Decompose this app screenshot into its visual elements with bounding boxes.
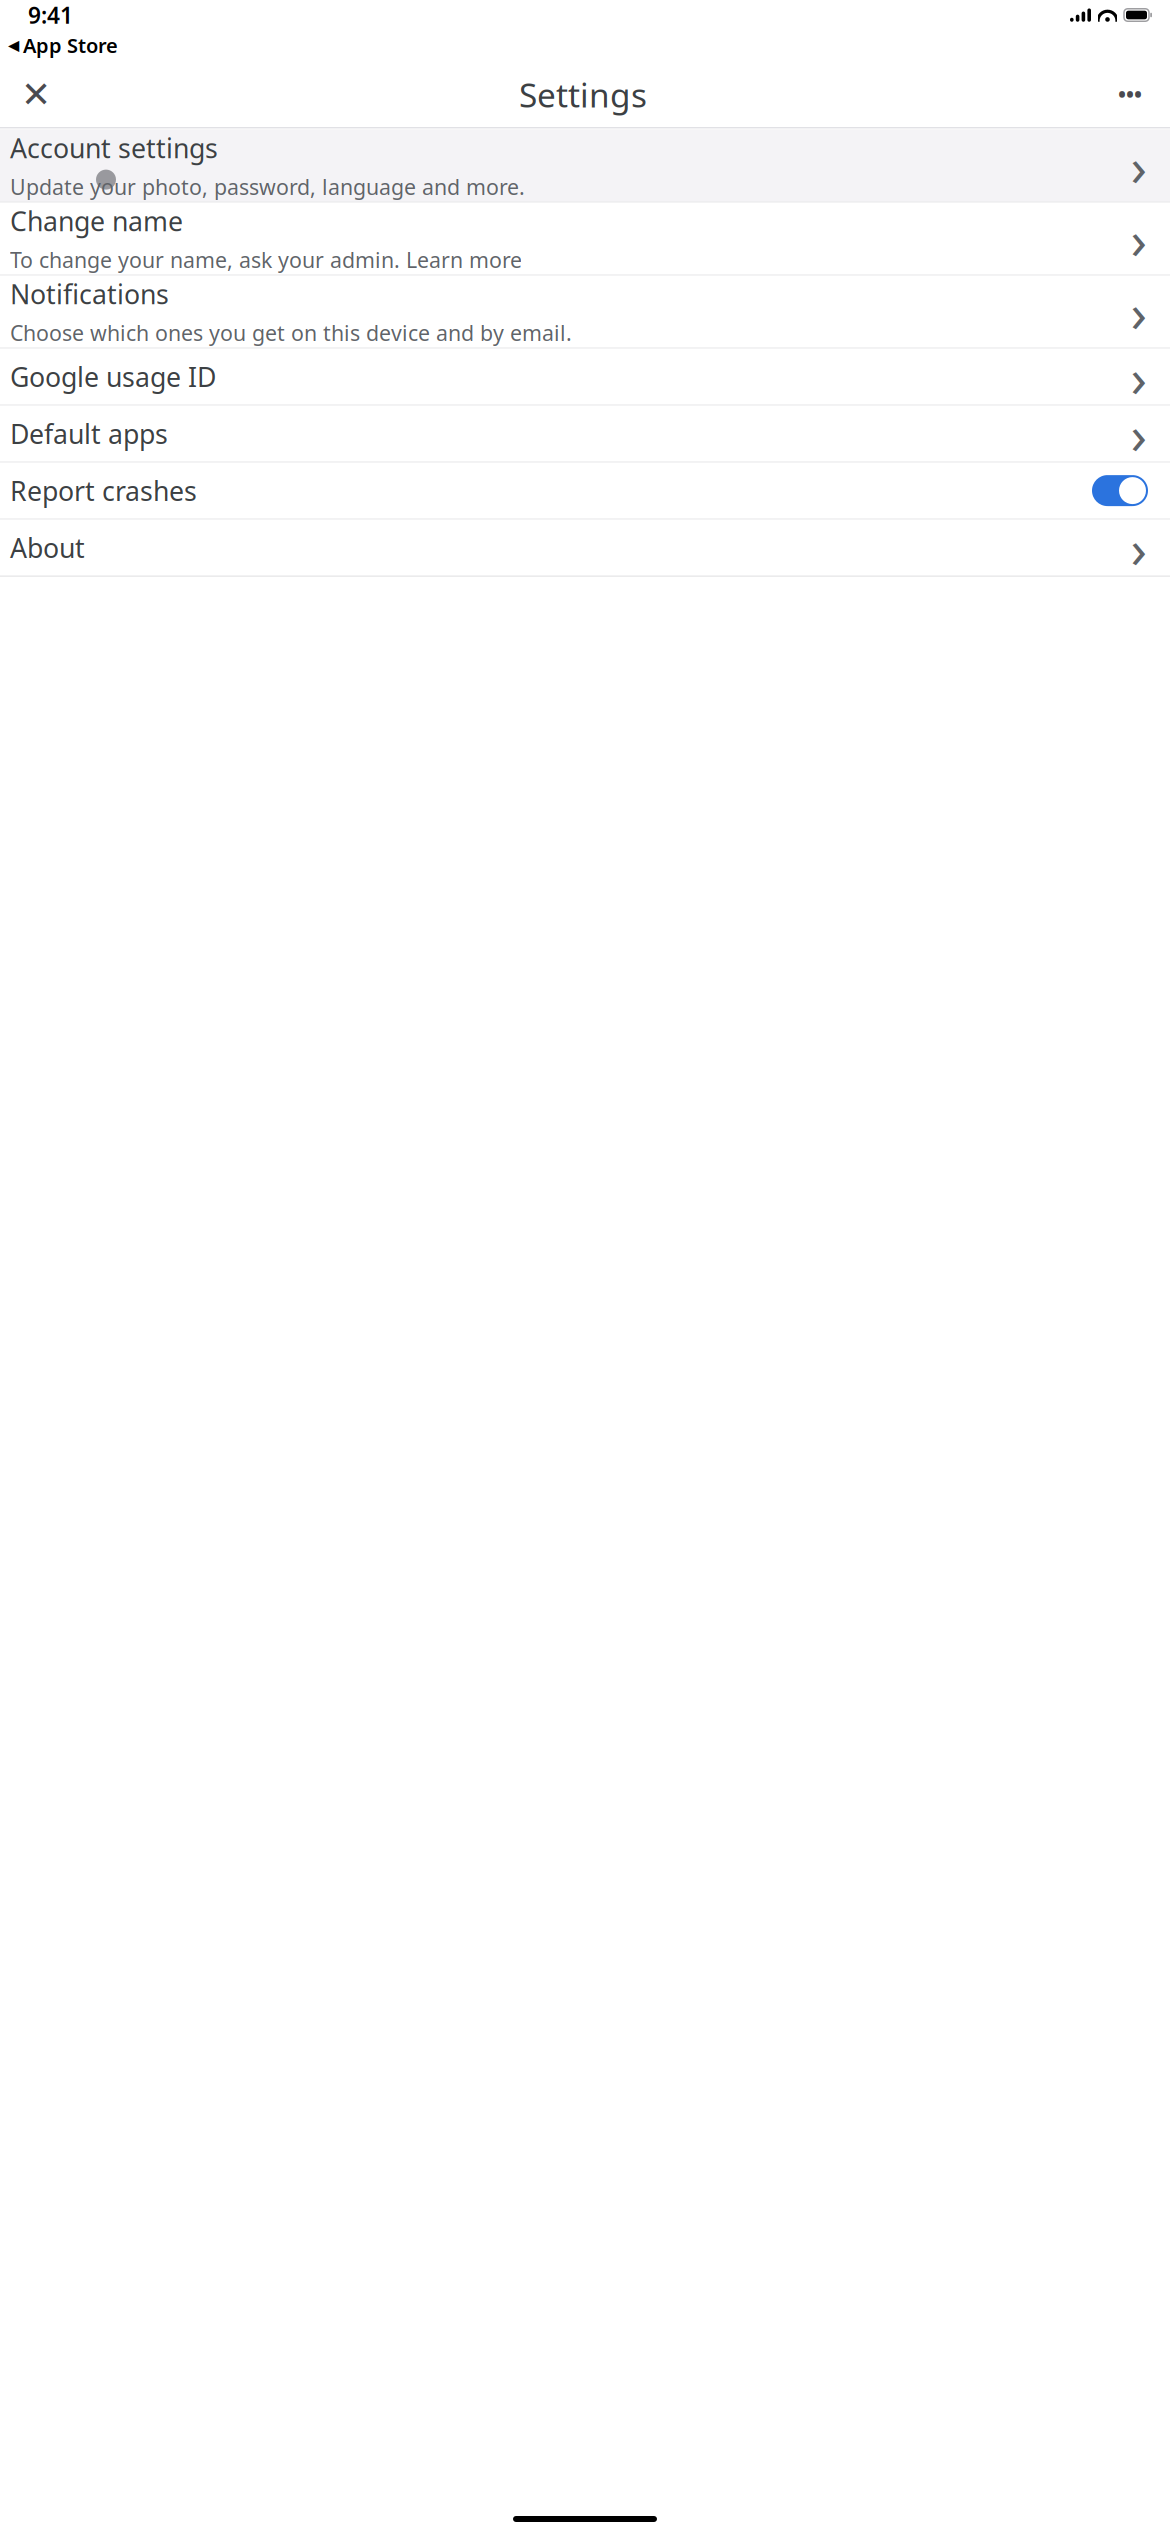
staticText: About [10, 530, 85, 565]
staticText: › [1130, 130, 1147, 201]
staticText: ••• [1118, 80, 1142, 109]
button[interactable]: About [0, 520, 1170, 576]
staticText: Google usage ID [10, 359, 216, 394]
button[interactable]: Notifications [0, 276, 1170, 348]
button[interactable]: Default apps [0, 406, 1170, 462]
staticText: Update your photo, password, language an… [10, 173, 525, 201]
staticText: Notifications [10, 276, 169, 312]
button[interactable]: Report crashes [0, 463, 1170, 519]
staticText: › [1130, 341, 1147, 412]
staticText: › [1130, 398, 1147, 469]
staticText: To change your name, ask your admin. Lea… [10, 246, 522, 274]
staticText: Report crashes [10, 473, 197, 508]
button[interactable]: Account settings [0, 130, 1170, 202]
staticText: › [1130, 276, 1147, 347]
button[interactable]: More options [1102, 66, 1158, 122]
staticText: Account settings [10, 130, 218, 166]
staticText: › [1130, 203, 1147, 274]
button[interactable]: Close [8, 66, 64, 122]
button[interactable]: Google usage ID [0, 349, 1170, 405]
staticText: › [1130, 512, 1147, 583]
staticText: Settings [519, 72, 647, 117]
staticText: App Store [23, 32, 118, 59]
button[interactable]: Change name [0, 203, 1170, 275]
staticText: Choose which ones you get on this device… [10, 319, 572, 347]
staticText: ◀ [8, 37, 19, 54]
staticText: ✕ [21, 74, 51, 115]
staticText: 9:41 [28, 0, 73, 30]
button[interactable]: ◀ [0, 30, 118, 61]
staticText: Change name [10, 203, 183, 239]
staticText: Default apps [10, 416, 168, 451]
